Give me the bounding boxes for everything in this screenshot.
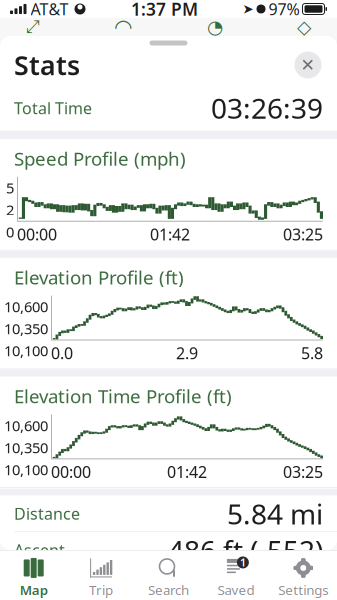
button[interactable]: Settings: [270, 551, 337, 600]
staticText: 10,350: [4, 319, 48, 338]
staticText: Trip: [89, 581, 113, 599]
button[interactable]: Close: [293, 50, 323, 80]
button[interactable]: Search: [135, 551, 202, 600]
button[interactable]: 1: [202, 551, 270, 600]
staticText: ◇: [297, 16, 311, 38]
button[interactable]: Max Elevation: [0, 569, 337, 600]
staticText: Speed Profile (mph): [14, 146, 186, 171]
staticText: 03:25: [283, 461, 323, 482]
staticText: 2: [6, 200, 14, 220]
staticText: 03:25: [283, 224, 323, 245]
staticText: ◠: [114, 15, 133, 39]
staticText: Stats: [14, 47, 80, 83]
staticText: 1: [240, 555, 246, 570]
staticText: ⤢: [26, 18, 40, 35]
staticText: Search: [148, 581, 189, 599]
staticText: Elevation Time Profile (ft): [14, 384, 232, 408]
staticText: 10,100: [4, 341, 48, 360]
staticText: 00:00: [17, 224, 57, 245]
button[interactable]: Ascent: [0, 532, 337, 568]
button[interactable]: Distance: [0, 495, 337, 531]
staticText: 10,600: [4, 297, 48, 316]
staticText: 5.8: [301, 342, 323, 364]
staticText: Saved: [217, 581, 254, 599]
staticText: 0: [6, 222, 14, 242]
button[interactable]: Total Time: [0, 90, 337, 126]
staticText: 03:26:39: [211, 89, 323, 127]
staticText: Max Elevation: [14, 576, 119, 597]
button[interactable]: Trip: [67, 551, 135, 600]
staticText: 486 ft (-552): [168, 531, 323, 569]
staticText: 0.0: [51, 342, 73, 364]
staticText: Map: [20, 581, 48, 599]
staticText: 1:37 PM: [131, 0, 198, 20]
staticText: Ascent: [14, 539, 65, 561]
staticText: 10,350: [4, 438, 48, 457]
staticText: Settings: [278, 581, 328, 599]
staticText: Total Time: [14, 97, 92, 119]
staticText: 97%: [268, 0, 299, 20]
staticText: ✕: [300, 55, 315, 75]
staticText: ➤: [242, 1, 253, 16]
staticText: 5.84 mi: [227, 495, 323, 532]
staticText: 5: [6, 178, 14, 198]
staticText: 10,100: [4, 460, 48, 479]
staticText: Distance: [14, 503, 80, 524]
staticText: 01:42: [167, 461, 207, 482]
staticText: 00:00: [51, 461, 91, 482]
staticText: 2.9: [176, 342, 198, 364]
staticText: 01:42: [150, 224, 190, 245]
staticText: 10,597 ft: [208, 568, 323, 600]
staticText: 10,600: [4, 416, 48, 435]
staticText: AT&T: [30, 0, 68, 20]
staticText: ◔: [207, 16, 223, 38]
button[interactable]: Map: [0, 551, 67, 600]
staticText: Elevation Profile (ft): [14, 265, 184, 290]
